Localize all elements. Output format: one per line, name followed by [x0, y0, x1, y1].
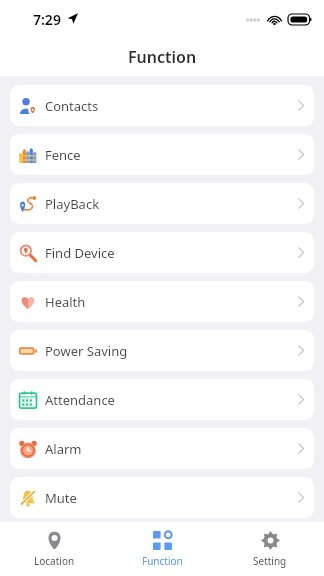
staticText: Attendance — [45, 391, 115, 409]
staticText: Function — [142, 554, 183, 568]
other: Location — [45, 531, 64, 550]
staticText: Function — [128, 46, 197, 68]
staticText: 7:29 — [33, 10, 61, 29]
staticText: Fence — [45, 146, 81, 164]
staticText: Setting — [253, 554, 287, 568]
button[interactable]: Location — [0, 522, 108, 576]
button[interactable]: Contacts — [10, 85, 314, 126]
button[interactable]: PlayBack — [10, 183, 314, 224]
button[interactable]: Fence — [10, 134, 314, 175]
button[interactable]: Find Device — [10, 232, 314, 273]
staticText: Location — [34, 554, 75, 568]
button[interactable]: Alarm — [10, 428, 314, 469]
staticText: Mute — [45, 489, 77, 507]
button[interactable]: Mute — [10, 477, 314, 518]
staticText: Contacts — [45, 97, 99, 115]
button[interactable]: Power Saving — [10, 330, 314, 371]
staticText: Find Device — [45, 244, 115, 262]
button[interactable]: Health — [10, 281, 314, 322]
button[interactable]: Function — [108, 522, 216, 576]
staticText: Alarm — [45, 440, 82, 458]
staticText: Power Saving — [45, 342, 128, 360]
other: Function — [153, 531, 172, 550]
staticText: PlayBack — [45, 195, 100, 213]
other: Setting — [261, 531, 280, 550]
button[interactable]: Attendance — [10, 379, 314, 420]
staticText: Health — [45, 293, 86, 311]
button[interactable]: Setting — [216, 522, 324, 576]
